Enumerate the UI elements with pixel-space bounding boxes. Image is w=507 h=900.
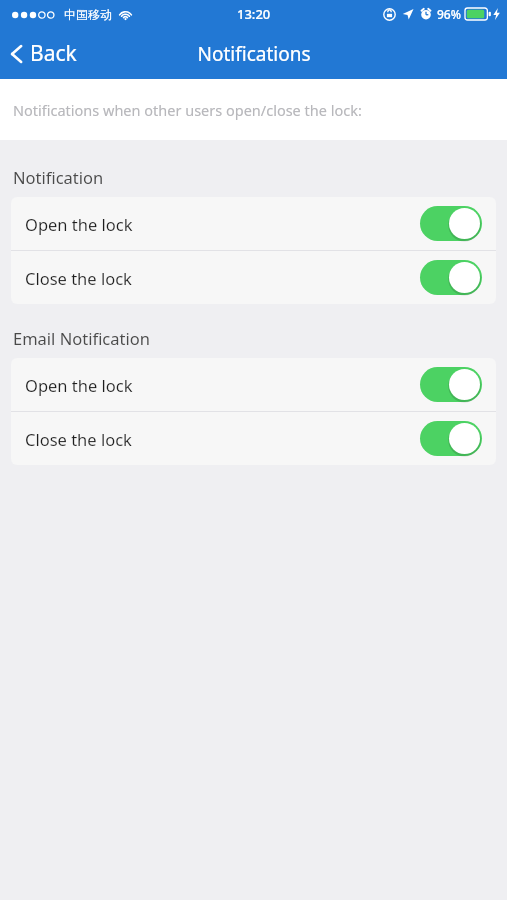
- button[interactable]: Toggle notification: [420, 206, 482, 241]
- staticText: Notification: [13, 166, 104, 188]
- staticText: Open the lock: [25, 213, 133, 235]
- staticText: Back: [30, 39, 77, 68]
- button[interactable]: Close the lock: [11, 412, 496, 465]
- button[interactable]: Back: [0, 33, 91, 74]
- button[interactable]: Toggle notification: [420, 367, 482, 402]
- staticText: Email Notification: [13, 327, 150, 349]
- button[interactable]: Toggle notification: [420, 421, 482, 456]
- staticText: Notifications: [197, 41, 311, 67]
- button[interactable]: Close the lock: [11, 251, 496, 304]
- staticText: Open the lock: [25, 374, 133, 396]
- staticText: Close the lock: [25, 428, 132, 450]
- button[interactable]: Toggle notification: [420, 260, 482, 295]
- staticText: 96%: [437, 6, 461, 22]
- staticText: 中国移动: [64, 7, 112, 22]
- staticText: 13:20: [237, 5, 271, 23]
- staticText: Notifications when other users open/clos…: [13, 100, 362, 120]
- staticText: Close the lock: [25, 267, 132, 289]
- button[interactable]: Open the lock: [11, 358, 496, 411]
- button[interactable]: Open the lock: [11, 197, 496, 250]
